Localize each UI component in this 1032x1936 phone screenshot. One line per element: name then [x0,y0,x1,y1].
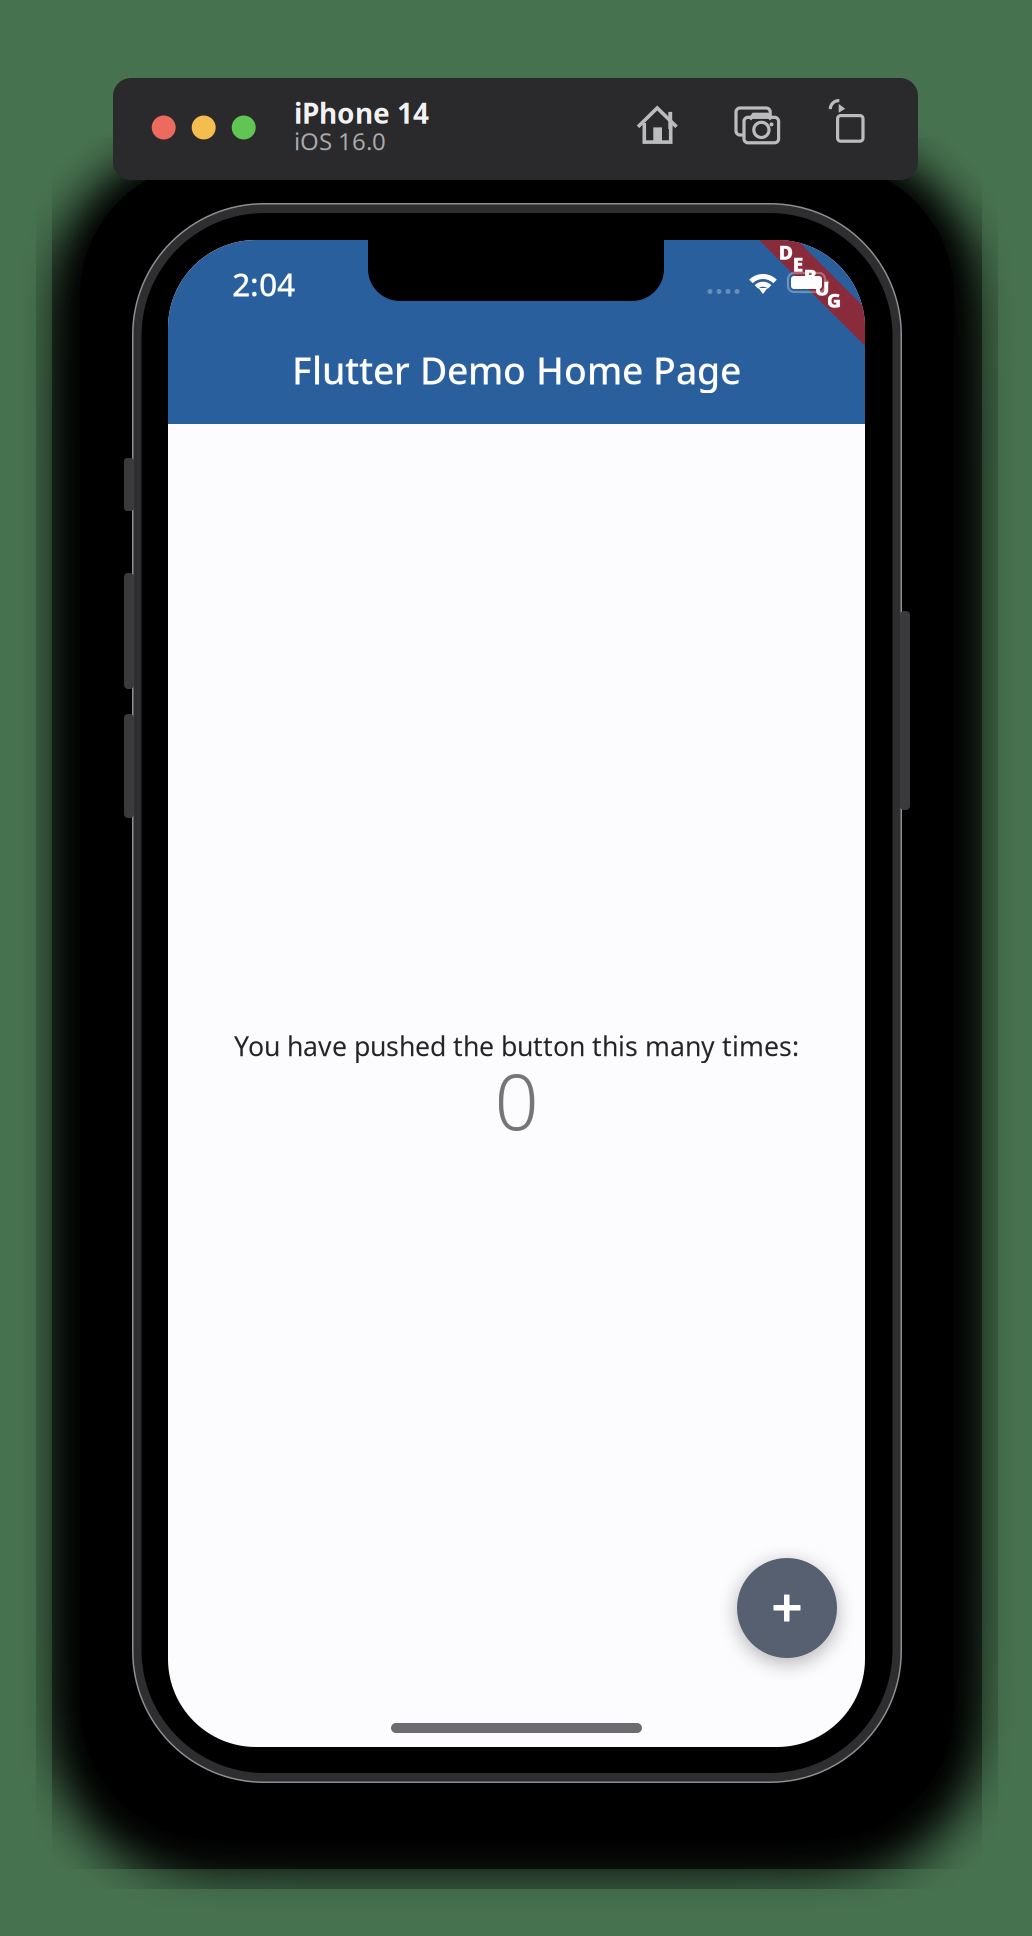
button[interactable]: Rotate [830,104,864,142]
staticText: iOS 16.0 [294,125,386,157]
staticText: B [803,263,816,289]
staticText: E [792,251,803,277]
staticText: You have pushed the button this many tim… [234,1028,799,1064]
staticText: 0 [494,1049,538,1151]
staticText: 2:04 [232,263,295,305]
staticText: U [814,275,829,301]
staticText: D [778,239,793,265]
button[interactable]: Home [638,108,679,143]
button[interactable]: Minimise [192,115,216,139]
button[interactable]: Increment [737,1558,837,1658]
button[interactable]: Screenshot [736,108,779,143]
staticText: Flutter Demo Home Page [292,345,741,395]
staticText: iPhone 14 [294,94,429,132]
button[interactable]: Zoom [232,115,256,139]
button[interactable]: Close [152,115,176,139]
staticText: G [826,287,841,313]
